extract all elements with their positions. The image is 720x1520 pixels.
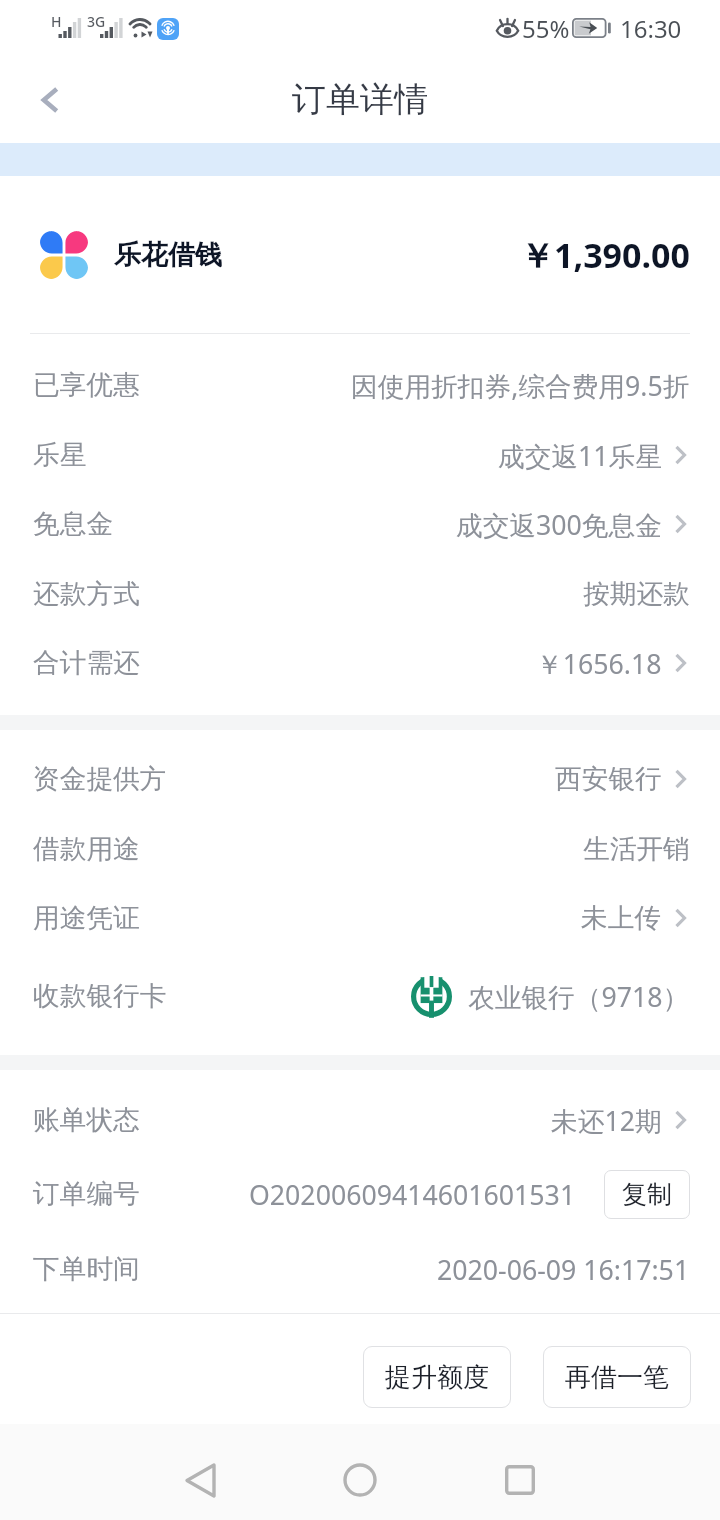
staticText: H (51, 12, 62, 31)
button[interactable]: 借款用途 (0, 814, 720, 884)
staticText: 乐花借钱 (114, 238, 222, 272)
staticText: 收款银行卡 (33, 979, 167, 1013)
staticText: 合计需还 (33, 646, 140, 680)
staticText: 按期还款 (583, 577, 690, 611)
staticText: 未上传 (581, 901, 662, 935)
button[interactable]: 下单时间 (0, 1234, 720, 1304)
staticText: 因使用折扣券,综合费用9.5折 (351, 367, 690, 403)
staticText: 提升额度 (385, 1361, 489, 1394)
staticText: 西安银行 (555, 762, 662, 796)
staticText: ￥1,390.00 (520, 232, 690, 278)
button[interactable]: 还款方式 (0, 559, 720, 629)
button[interactable]: Recents (480, 1440, 560, 1520)
button[interactable]: Home (320, 1440, 400, 1520)
staticText: 下单时间 (33, 1252, 140, 1286)
staticText: ￥1656.18 (536, 645, 662, 681)
button[interactable]: 用途凭证 (0, 883, 720, 953)
staticText: O20200609414601601531 (249, 1176, 576, 1212)
button[interactable]: 账单状态 (0, 1085, 720, 1155)
staticText: 2020-06-09 16:17:51 (437, 1251, 690, 1287)
staticText: 复制 (622, 1179, 672, 1210)
button[interactable]: 免息金 (0, 489, 720, 559)
button[interactable]: Back (22, 72, 78, 128)
staticText: 用途凭证 (33, 901, 140, 935)
button[interactable]: 资金提供方 (0, 744, 720, 814)
staticText: 乐星 (33, 438, 87, 472)
staticText: 订单编号 (33, 1177, 140, 1211)
button[interactable]: Back (160, 1440, 240, 1520)
button[interactable]: 再借一笔 (543, 1346, 691, 1408)
button[interactable]: 收款银行卡 (0, 961, 720, 1031)
staticText: 免息金 (33, 507, 114, 541)
staticText: 成交返300免息金 (456, 506, 662, 542)
staticText: 订单详情 (292, 78, 428, 121)
staticText: 账单状态 (33, 1103, 140, 1137)
staticText: 55% (522, 12, 570, 45)
staticText: 再借一笔 (565, 1361, 669, 1394)
button[interactable]: 复制 (604, 1170, 690, 1219)
staticText: 农业银行（9718） (468, 978, 690, 1014)
staticText: 生活开销 (583, 832, 690, 866)
button[interactable]: 已享优惠 (0, 350, 720, 420)
staticText: 还款方式 (33, 577, 140, 611)
staticText: 16:30 (620, 12, 682, 45)
staticText: 成交返11乐星 (498, 437, 662, 473)
button[interactable]: 提升额度 (363, 1346, 511, 1408)
staticText: 已享优惠 (33, 368, 140, 402)
staticText: 未还12期 (551, 1102, 662, 1138)
staticText: 3G (87, 12, 106, 31)
button[interactable]: 合计需还 (0, 628, 720, 698)
staticText: 借款用途 (33, 832, 140, 866)
button[interactable]: 乐星 (0, 420, 720, 490)
staticText: 资金提供方 (33, 762, 167, 796)
